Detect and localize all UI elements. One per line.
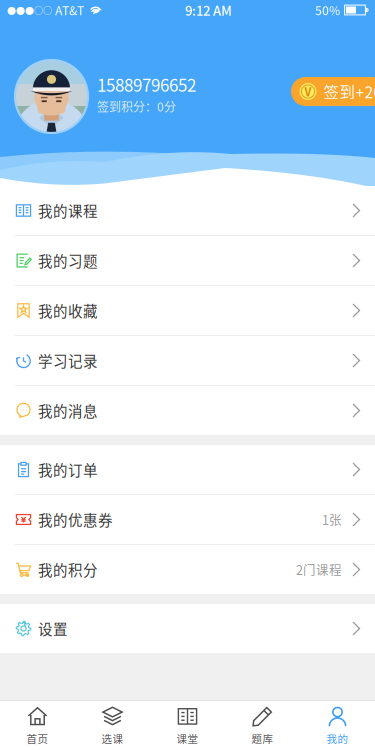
staticText: 我的习题: [38, 250, 98, 271]
staticText: V: [304, 83, 311, 99]
button[interactable]: 我的收藏: [0, 286, 375, 335]
button[interactable]: 我的课程: [0, 186, 375, 235]
staticText: 签到积分：0分: [97, 98, 176, 115]
staticText: 首页: [26, 731, 48, 746]
staticText: 课堂: [176, 731, 198, 746]
staticText: 我的: [326, 731, 348, 746]
button[interactable]: 我的优惠券: [0, 495, 375, 544]
staticText: 我的积分: [38, 559, 98, 580]
staticText: 50%: [315, 1, 340, 19]
button[interactable]: 我的积分: [0, 545, 375, 594]
staticText: 我的消息: [38, 400, 98, 421]
staticText: 我的优惠券: [38, 509, 113, 530]
staticText: 9:12 AM: [185, 1, 232, 19]
staticText: 2门课程: [296, 560, 342, 578]
staticText: 设置: [38, 618, 68, 639]
staticText: 15889796652: [97, 72, 196, 97]
button[interactable]: 首页: [0, 701, 75, 750]
button[interactable]: 我的消息: [0, 386, 375, 435]
button[interactable]: 我的习题: [0, 236, 375, 285]
staticText: 签到+20: [323, 80, 375, 103]
staticText: 选课: [101, 731, 123, 746]
staticText: 1张: [322, 510, 342, 528]
button[interactable]: 课堂: [150, 701, 225, 750]
staticText: ●●●○○: [7, 3, 52, 16]
button[interactable]: 设置: [0, 604, 375, 653]
staticText: 学习记录: [38, 350, 98, 371]
staticText: 我的收藏: [38, 300, 98, 321]
button[interactable]: 我的: [300, 701, 375, 750]
staticText: 题库: [251, 731, 273, 746]
button[interactable]: 签到+20: [291, 77, 375, 106]
staticText: AT&T: [52, 1, 84, 19]
button[interactable]: 我的订单: [0, 445, 375, 494]
button[interactable]: 选课: [75, 701, 150, 750]
button[interactable]: 学习记录: [0, 336, 375, 385]
button[interactable]: 题库: [225, 701, 300, 750]
staticText: 我的课程: [38, 200, 98, 221]
staticText: 我的订单: [38, 459, 98, 480]
